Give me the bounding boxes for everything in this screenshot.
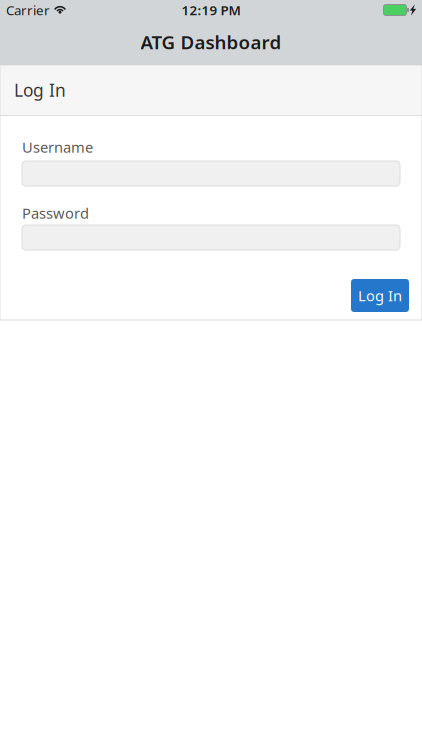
staticText: Carrier xyxy=(6,1,50,19)
staticText: Password xyxy=(22,203,89,223)
staticText: ATG Dashboard xyxy=(140,30,281,54)
staticText: Username xyxy=(22,137,93,157)
staticText: Log In xyxy=(358,286,402,305)
button[interactable]: Log In xyxy=(351,279,409,312)
staticText: Log In xyxy=(14,78,66,101)
staticText: 12:19 PM xyxy=(181,1,240,19)
